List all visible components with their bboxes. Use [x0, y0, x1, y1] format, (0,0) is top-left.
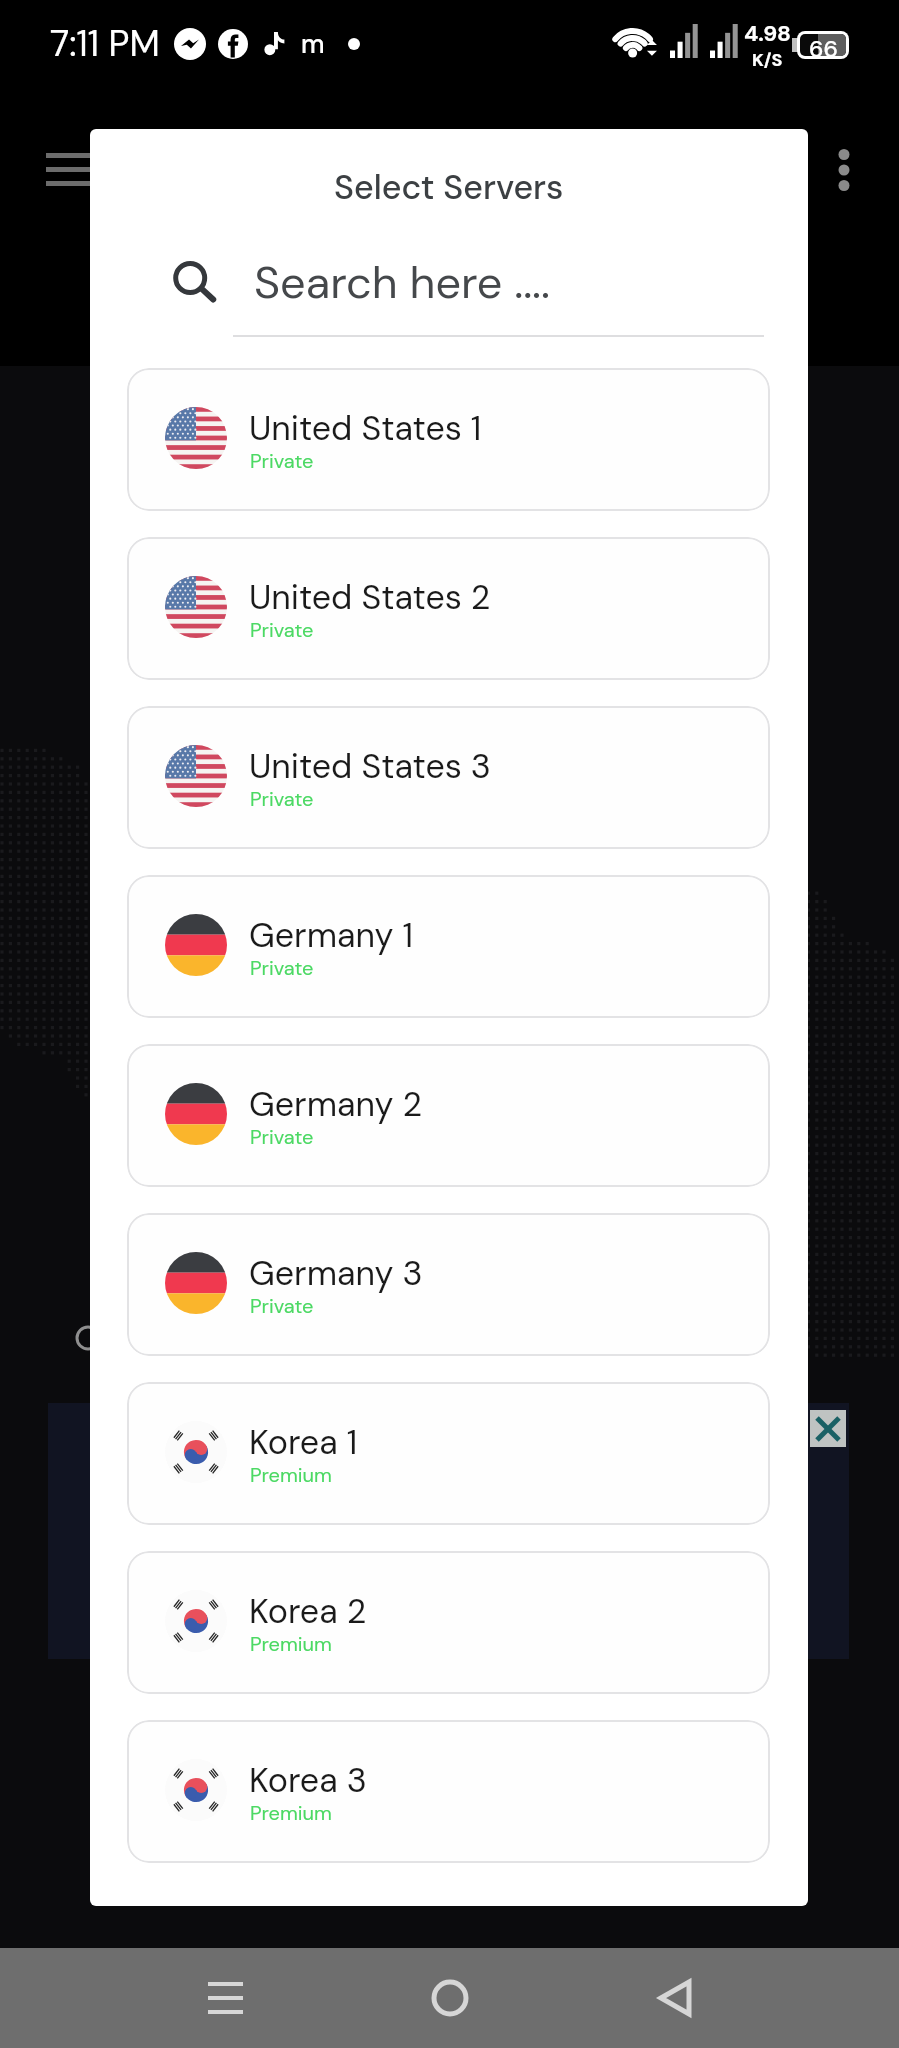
staticText: Germany 3	[249, 1251, 423, 1295]
staticText: Germany 2	[249, 1082, 422, 1126]
button[interactable]: Close ad	[810, 1410, 846, 1447]
staticText: 4.98	[744, 19, 791, 48]
staticText: 66	[809, 34, 838, 56]
button[interactable]: Korea 2	[127, 1551, 770, 1694]
button[interactable]: United States 3	[127, 706, 770, 849]
staticText: United States 1	[249, 406, 482, 450]
other: Search	[171, 255, 219, 303]
button[interactable]: Menu	[46, 150, 92, 186]
staticText: Private	[250, 955, 314, 981]
button[interactable]: Korea 1	[127, 1382, 770, 1525]
staticText: Premium	[250, 1462, 332, 1488]
staticText: Select Servers	[334, 165, 564, 209]
button[interactable]: Back	[628, 1948, 722, 2048]
staticText: m	[301, 27, 325, 61]
button[interactable]: Germany 1	[127, 875, 770, 1018]
staticText: Germany 1	[249, 913, 414, 957]
button[interactable]: United States 2	[127, 537, 770, 680]
staticText: Korea 1	[249, 1420, 358, 1464]
staticText: Private	[250, 1293, 314, 1319]
staticText: K/S	[752, 48, 783, 71]
button[interactable]: Search	[143, 239, 764, 337]
button[interactable]: Germany 3	[127, 1213, 770, 1356]
button[interactable]: Home	[403, 1948, 497, 2048]
button[interactable]: More options	[836, 146, 852, 194]
button[interactable]: Korea 3	[127, 1720, 770, 1863]
button[interactable]: Recent apps	[178, 1948, 272, 2048]
staticText: United States 2	[249, 575, 491, 619]
button[interactable]: Germany 2	[127, 1044, 770, 1187]
staticText: 7:11 PM	[50, 20, 160, 67]
staticText: Private	[250, 448, 314, 474]
staticText: Premium	[250, 1631, 332, 1657]
staticText: Search here ....	[254, 253, 550, 312]
staticText: Private	[250, 1124, 314, 1150]
button[interactable]: United States 1	[127, 368, 770, 511]
button[interactable]: Connect	[40, 1300, 116, 1376]
staticText: Private	[250, 786, 314, 812]
staticText: United States 3	[249, 744, 491, 788]
staticText: Premium	[250, 1800, 332, 1826]
staticText: Private	[250, 617, 314, 643]
staticText: Korea 2	[249, 1589, 367, 1633]
staticText: Korea 3	[249, 1758, 367, 1802]
